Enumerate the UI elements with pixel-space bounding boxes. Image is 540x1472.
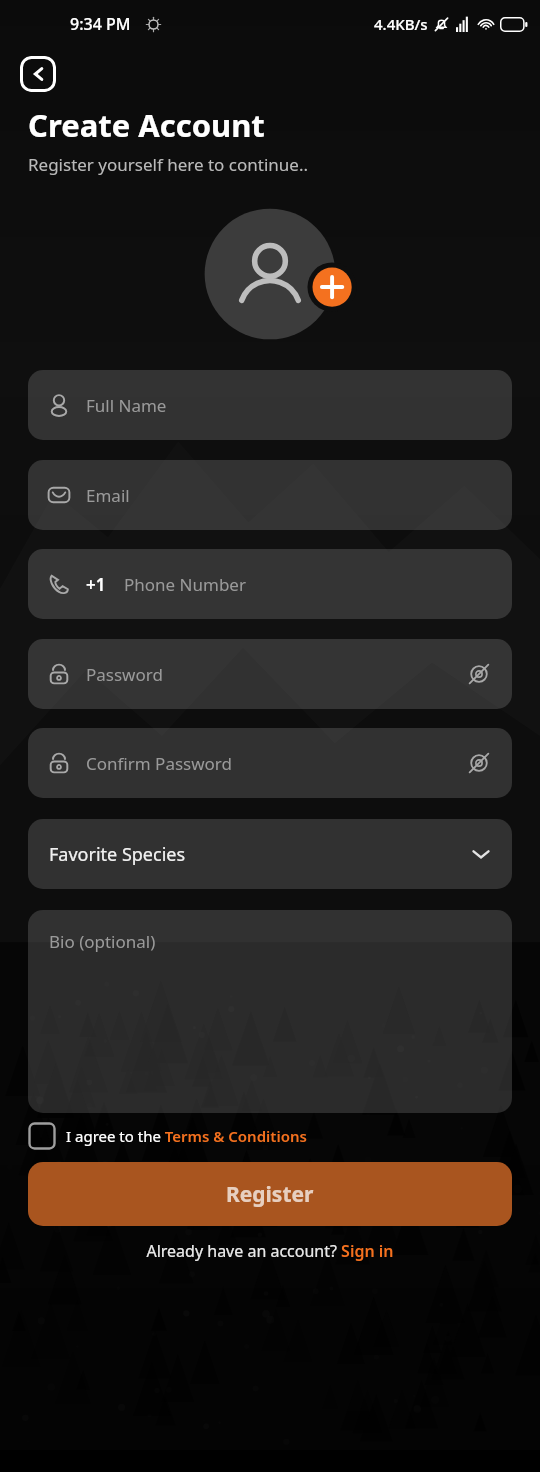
staticText: 9:34 PM	[70, 13, 131, 35]
staticText: Bio (optional)	[49, 930, 156, 953]
button[interactable]: Email	[28, 460, 512, 530]
button[interactable]: Confirm Password	[28, 728, 512, 798]
staticText: 4.4KB/s	[374, 14, 428, 34]
button[interactable]: Show password	[464, 659, 494, 689]
staticText: Register	[226, 1180, 314, 1209]
staticText: Already have an account? Sign in	[146, 1240, 394, 1262]
button[interactable]: I agree to the Terms & Conditions	[28, 1122, 512, 1150]
staticText: Full Name	[86, 394, 167, 417]
staticText: Password	[86, 663, 163, 686]
button[interactable]: Full Name	[28, 370, 512, 440]
button[interactable]: Add profile photo	[194, 198, 346, 350]
button[interactable]: Already have an account? Sign in	[146, 1240, 394, 1262]
staticText: Confirm Password	[86, 752, 232, 775]
staticText: Phone Number	[124, 573, 246, 596]
button[interactable]: Show password	[464, 748, 494, 778]
staticText: Favorite Species	[49, 842, 186, 867]
button[interactable]: Back	[20, 56, 56, 92]
button[interactable]: Bio (optional)	[28, 910, 512, 1113]
staticText: Create Account	[28, 104, 265, 146]
staticText: Email	[86, 484, 130, 507]
button[interactable]: Password	[28, 639, 512, 709]
button[interactable]: Register	[28, 1162, 512, 1226]
staticText: I agree to the Terms & Conditions	[66, 1126, 307, 1146]
button[interactable]: +1	[28, 549, 512, 619]
button[interactable]: Favorite Species	[28, 819, 512, 889]
staticText: +1	[86, 573, 106, 596]
staticText: Register yourself here to continue..	[28, 153, 308, 176]
